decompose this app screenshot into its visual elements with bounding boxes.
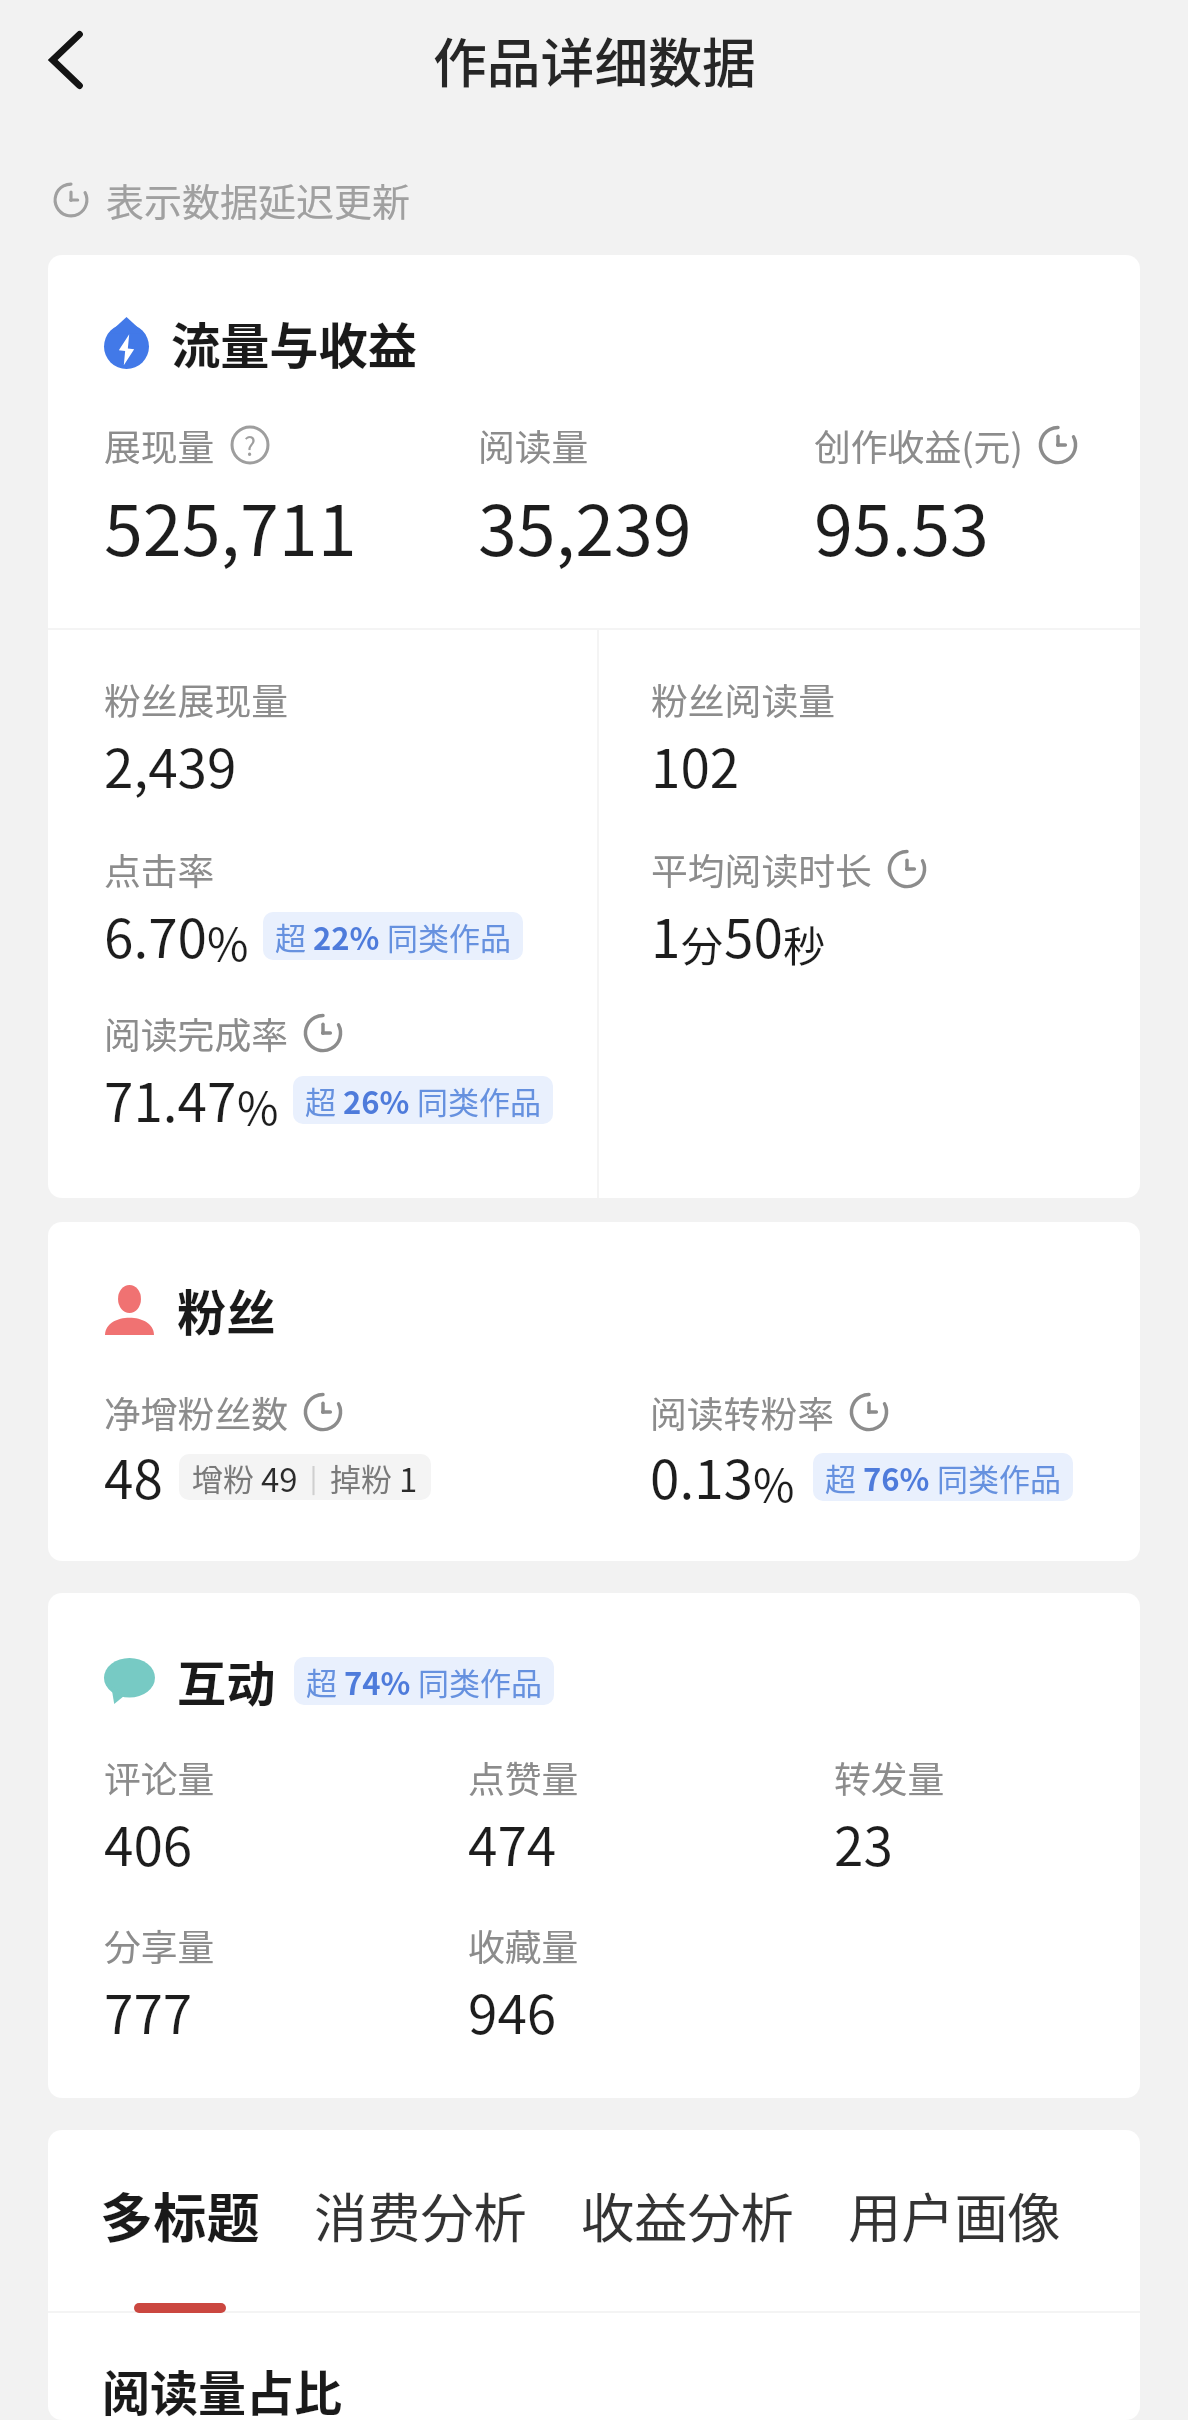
staticText: 表示数据延迟更新 [106, 172, 411, 227]
staticText: 增粉 [192, 1455, 261, 1500]
staticText: 转发量 [834, 1750, 945, 1803]
staticText: 95.53 [814, 475, 989, 576]
staticText: 秒 [783, 913, 826, 974]
staticText: 超 [306, 1659, 344, 1704]
staticText: 粉丝 [177, 1274, 276, 1345]
staticText: 净增粉丝数 [104, 1385, 288, 1438]
staticText: 掉粉 [330, 1455, 399, 1500]
staticText: 474 [468, 1805, 557, 1882]
staticText: 展现量 [104, 418, 215, 471]
staticText: % [753, 1450, 795, 1515]
staticText: 同类作品 [380, 914, 511, 959]
staticText: 平均阅读时长 [651, 842, 872, 895]
staticText: 超 [305, 1078, 343, 1123]
staticText: 1 [399, 1454, 418, 1500]
button[interactable]: 用户画像 [848, 2176, 1061, 2313]
staticText: 2,439 [104, 727, 237, 804]
staticText: 超 [825, 1455, 863, 1500]
staticText: 6.70 [104, 897, 207, 974]
staticText: 35,239 [478, 475, 692, 576]
staticText: 74% [344, 1659, 411, 1704]
staticText: 71.47 [104, 1061, 237, 1138]
staticText: 收藏量 [468, 1918, 579, 1971]
staticText: 阅读量 [478, 418, 589, 471]
staticText: 26% [343, 1078, 410, 1123]
staticText: 946 [468, 1973, 557, 2050]
staticText: 48 [104, 1438, 163, 1515]
staticText: ? [244, 427, 256, 463]
staticText: 流量与收益 [171, 307, 417, 378]
staticText: 同类作品 [411, 1659, 542, 1704]
staticText: 49 [261, 1454, 298, 1500]
staticText: 创作收益(元) [814, 418, 1023, 471]
staticText: 406 [104, 1805, 193, 1882]
staticText: 多标题 [100, 2176, 260, 2253]
staticText: 超 [275, 914, 313, 959]
staticText: 评论量 [104, 1750, 215, 1803]
staticText: 分享量 [104, 1918, 215, 1971]
staticText: | [310, 1458, 318, 1496]
staticText: 22% [313, 914, 380, 959]
staticText: 777 [104, 1973, 193, 2050]
staticText: 阅读量占比 [102, 2355, 343, 2420]
staticText: 0.13 [650, 1438, 753, 1515]
button[interactable]: 多标题 [100, 2176, 314, 2313]
staticText: 525,711 [104, 475, 357, 576]
staticText: 阅读完成率 [104, 1006, 288, 1059]
button[interactable]: 消费分析 [314, 2176, 581, 2313]
staticText: 消费分析 [314, 2176, 527, 2253]
staticText: 76% [863, 1455, 930, 1500]
staticText: 50 [724, 897, 783, 974]
staticText: 互动 [177, 1645, 276, 1716]
staticText: 分 [681, 913, 724, 974]
staticText: 同类作品 [410, 1078, 541, 1123]
staticText: % [207, 909, 249, 974]
staticText: % [237, 1073, 279, 1138]
staticText: 点赞量 [468, 1750, 579, 1803]
staticText: 102 [651, 727, 740, 804]
staticText: 1 [651, 897, 681, 974]
staticText: 收益分析 [581, 2176, 794, 2253]
staticText: 23 [834, 1805, 893, 1882]
staticText: 粉丝展现量 [104, 672, 288, 725]
staticText: 作品详细数据 [433, 21, 756, 99]
staticText: 粉丝阅读量 [651, 672, 835, 725]
button[interactable]: Help [229, 424, 271, 466]
staticText: 用户画像 [848, 2176, 1061, 2253]
button[interactable]: Back [22, 14, 114, 106]
staticText: 点击率 [104, 842, 215, 895]
button[interactable]: 收益分析 [581, 2176, 848, 2313]
staticText: 阅读转粉率 [650, 1385, 834, 1438]
staticText: 同类作品 [930, 1455, 1061, 1500]
